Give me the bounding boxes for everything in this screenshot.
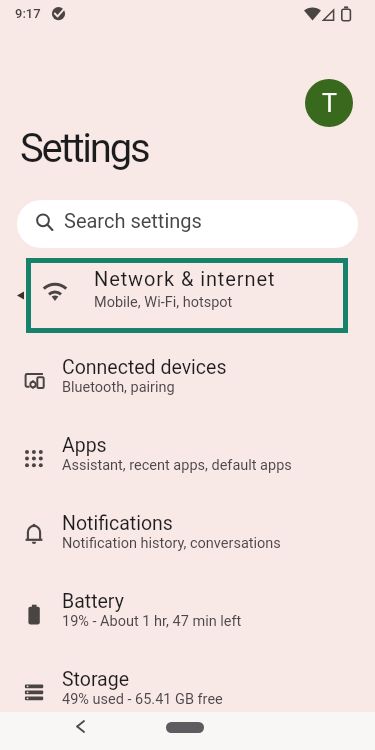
staticText: Storage	[62, 668, 130, 691]
staticText: 9:17	[15, 6, 41, 21]
button[interactable]: Notifications	[0, 494, 375, 572]
staticText: Connected devices	[62, 356, 227, 379]
button[interactable]: Battery	[0, 572, 375, 650]
button[interactable]: T	[305, 79, 353, 127]
staticText: Mobile, Wi-Fi, hotspot	[94, 294, 233, 311]
staticText: Assistant, recent apps, default apps	[62, 457, 292, 474]
button[interactable]: Connected devices	[0, 338, 375, 416]
button[interactable]: Search settings	[17, 200, 358, 248]
button[interactable]: Apps	[0, 416, 375, 494]
staticText: Notification history, conversations	[62, 535, 281, 552]
staticText: Apps	[62, 434, 107, 457]
staticText: Battery	[62, 590, 124, 613]
staticText: 49% used - 65.41 GB free	[62, 691, 223, 708]
staticText: 19% - About 1 hr, 47 min left	[62, 613, 242, 630]
button[interactable]: Network & internet	[26, 258, 348, 333]
button[interactable]	[72, 718, 88, 734]
staticText: Network & internet	[94, 267, 276, 290]
staticText: Bluetooth, pairing	[62, 379, 175, 396]
button[interactable]	[166, 722, 204, 733]
button[interactable]: Storage	[0, 650, 375, 728]
staticText: Notifications	[62, 512, 173, 535]
staticText: Search settings	[64, 209, 202, 232]
staticText: Settings	[20, 125, 149, 172]
staticText: T	[322, 89, 337, 118]
